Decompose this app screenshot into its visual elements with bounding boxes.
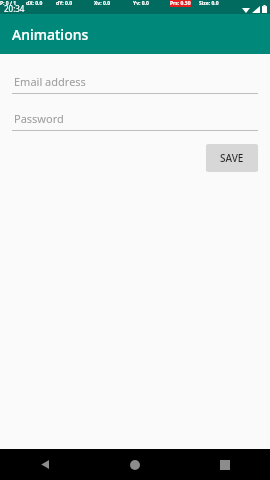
button[interactable]: SAVE — [206, 144, 258, 172]
staticText: dX: 0.0 — [26, 0, 56, 7]
staticText: 20:34 — [4, 3, 25, 14]
staticText: Yv: 0.0 — [133, 0, 170, 7]
staticText: dY: 0.0 — [56, 0, 94, 7]
button[interactable]: Back — [0, 449, 90, 480]
button[interactable]: Email address — [12, 70, 258, 94]
button[interactable]: Password — [12, 107, 258, 131]
button[interactable]: Recents — [180, 449, 270, 480]
staticText: SAVE — [220, 151, 244, 165]
staticText: Prs: 0.50 — [170, 0, 191, 7]
staticText: Email address — [14, 74, 86, 89]
staticText: Animations — [12, 25, 89, 44]
staticText: P: 0 / 1 — [0, 0, 26, 7]
staticText: Xv: 0.0 — [94, 0, 133, 7]
button[interactable]: Home — [90, 449, 180, 480]
staticText: Password — [14, 111, 64, 126]
staticText: Size: 0.0 — [199, 0, 229, 7]
